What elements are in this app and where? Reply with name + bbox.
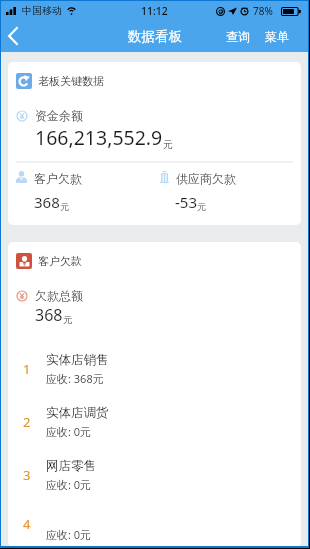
staticText: -53 bbox=[175, 192, 197, 212]
staticText: 1 bbox=[23, 360, 31, 378]
staticText: 数据看板 bbox=[128, 28, 182, 45]
staticText: 元 bbox=[197, 201, 206, 212]
staticText: 资金余额 bbox=[35, 108, 83, 123]
staticText: 客户欠款 bbox=[38, 254, 82, 268]
staticText: 元 bbox=[63, 314, 73, 326]
button[interactable]: 老板关键数据 bbox=[16, 73, 301, 89]
staticText: 网店零售 bbox=[46, 458, 96, 474]
staticText: 2 bbox=[23, 413, 31, 431]
button[interactable]: 查询 bbox=[222, 22, 254, 51]
button[interactable]: 3 bbox=[8, 448, 301, 501]
staticText: 元 bbox=[163, 138, 173, 151]
staticText: 供应商欠款 bbox=[176, 171, 236, 186]
staticText: 查询 bbox=[226, 29, 250, 44]
staticText: 老板关键数据 bbox=[38, 74, 104, 88]
staticText: 中国移动 bbox=[22, 4, 62, 17]
button[interactable]: 客户欠款 bbox=[16, 253, 301, 269]
button[interactable]: 4 bbox=[8, 501, 301, 547]
button[interactable]: 菜单 bbox=[261, 22, 293, 51]
staticText: 368 bbox=[34, 192, 60, 212]
staticText: 应收: 0元 bbox=[46, 477, 92, 492]
staticText: 11:12 bbox=[141, 4, 168, 18]
staticText: 78% bbox=[253, 4, 273, 18]
staticText: 3 bbox=[23, 466, 31, 484]
staticText: 菜单 bbox=[265, 29, 289, 44]
staticText: 欠款总额 bbox=[35, 288, 83, 303]
staticText: 实体店销售 bbox=[46, 352, 109, 368]
staticText: 368 bbox=[35, 304, 63, 326]
staticText: 应收: 0元 bbox=[46, 527, 92, 542]
staticText: 应收: 368元 bbox=[46, 371, 104, 386]
staticText: 客户欠款 bbox=[34, 171, 82, 186]
button[interactable]: 1 bbox=[8, 342, 301, 395]
staticText: 4 bbox=[23, 515, 31, 533]
staticText: 应收: 0元 bbox=[46, 424, 92, 439]
button[interactable]: Back bbox=[1, 20, 24, 52]
staticText: 元 bbox=[60, 201, 69, 212]
staticText: 实体店调货 bbox=[46, 405, 109, 421]
staticText: 166,213,552.9 bbox=[35, 124, 163, 151]
button[interactable]: 2 bbox=[8, 395, 301, 448]
